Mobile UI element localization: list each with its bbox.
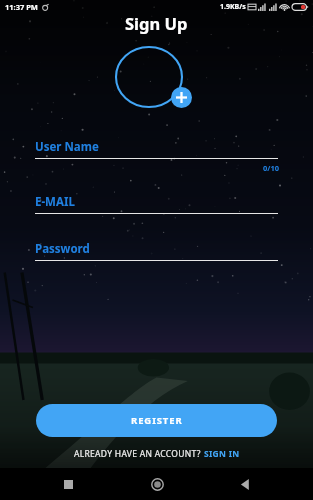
staticText: 1.9KB/s xyxy=(220,2,246,12)
button[interactable]: User Name xyxy=(0,135,313,164)
button[interactable]: E-MAIL xyxy=(0,190,313,219)
button[interactable]: Back xyxy=(225,468,265,500)
staticText: 11:37 PM xyxy=(5,2,38,12)
staticText: User Name xyxy=(35,139,99,155)
button[interactable]: Recents xyxy=(48,468,88,500)
button[interactable]: Home xyxy=(137,468,177,500)
staticText: Password xyxy=(35,241,90,257)
button[interactable]: Password xyxy=(0,237,313,266)
button[interactable]: SIGN IN xyxy=(204,448,240,460)
staticText: SIGN IN xyxy=(204,448,240,460)
staticText: Sign Up xyxy=(125,12,188,34)
staticText: ALREADY HAVE AN ACCOUNT? xyxy=(74,448,204,460)
button[interactable]: Add profile photo xyxy=(115,46,201,114)
staticText: E-MAIL xyxy=(35,194,75,210)
staticText: REGISTER xyxy=(131,414,183,427)
button[interactable]: REGISTER xyxy=(36,404,277,437)
staticText: 0/10 xyxy=(263,163,279,173)
